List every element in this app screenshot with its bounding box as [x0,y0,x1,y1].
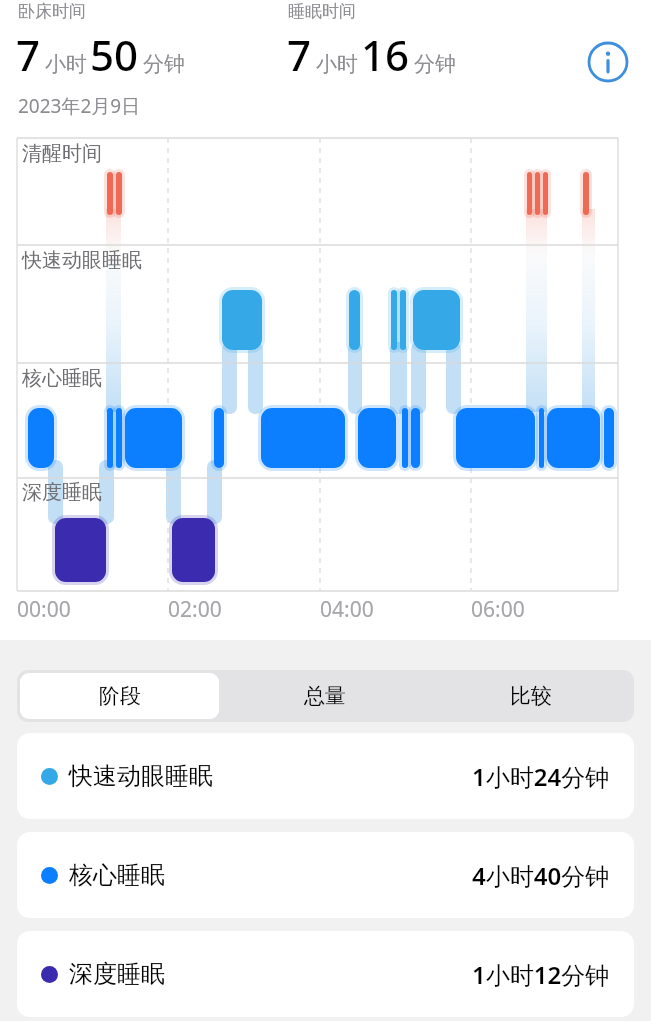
staticText: 分钟 [143,51,185,77]
staticText: 06:00 [471,595,525,624]
staticText: 小时 [316,51,358,77]
staticText: 比较 [510,683,552,709]
staticText: 核心睡眠 [69,860,165,890]
button[interactable]: 比较 [431,673,631,719]
staticText: 清醒时间 [22,141,102,166]
staticText: 50 [90,26,139,83]
staticText: 深度睡眠 [22,480,102,505]
staticText: 分钟 [414,51,456,77]
staticText: 阶段 [99,683,141,709]
button[interactable]: Info [586,40,630,84]
staticText: 04:00 [320,595,374,624]
staticText: 核心睡眠 [22,366,102,391]
staticText: 睡眠时间 [288,1,356,22]
staticText: 总量 [304,683,346,709]
staticText: 卧床时间 [18,1,86,22]
staticText: 深度睡眠 [69,959,165,989]
button[interactable]: 核心睡眠 [17,832,634,918]
staticText: 快速动眼睡眠 [69,761,213,791]
button[interactable]: 总量 [225,673,425,719]
button[interactable]: 阶段 [20,673,219,719]
button[interactable]: 快速动眼睡眠 [17,733,634,819]
staticText: 2023年2月9日 [18,93,141,119]
staticText: 7 [16,26,41,83]
staticText: 16 [361,26,410,83]
staticText: 4小时40分钟 [472,859,610,892]
staticText: 02:00 [168,595,222,624]
button[interactable]: 深度睡眠 [17,931,634,1017]
staticText: 1小时24分钟 [472,760,610,793]
staticText: 快速动眼睡眠 [22,248,142,273]
staticText: 7 [287,26,312,83]
staticText: 00:00 [17,595,71,624]
staticText: 1小时12分钟 [472,958,610,991]
staticText: 小时 [45,51,87,77]
